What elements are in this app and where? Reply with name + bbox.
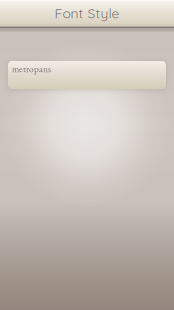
staticText: Font Style (54, 4, 119, 22)
button[interactable]: metropans (8, 61, 166, 89)
staticText: metropans (12, 63, 51, 75)
